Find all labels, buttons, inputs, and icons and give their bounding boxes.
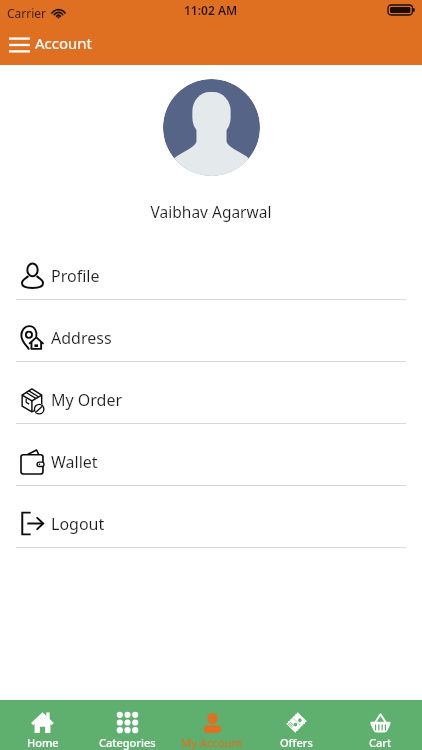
button[interactable]: My Account xyxy=(170,700,254,750)
staticText: Profile xyxy=(51,265,100,287)
staticText: Cart xyxy=(369,735,392,750)
staticText: Home xyxy=(27,735,59,750)
staticText: My Account xyxy=(181,735,243,750)
button[interactable]: Home xyxy=(0,700,85,750)
button[interactable]: Offers xyxy=(254,700,338,750)
button[interactable]: My Order xyxy=(0,362,422,424)
button[interactable]: Address xyxy=(0,300,422,362)
staticText: Logout xyxy=(51,513,105,535)
staticText: Account xyxy=(35,33,93,53)
staticText: Offers xyxy=(280,735,313,750)
button[interactable]: Categories xyxy=(85,700,170,750)
staticText: Vaibhav Agarwal xyxy=(0,201,422,222)
staticText: 11:02 AM xyxy=(184,2,238,18)
button[interactable]: Wallet xyxy=(0,424,422,486)
staticText: Carrier xyxy=(7,5,47,21)
button[interactable]: Menu xyxy=(9,37,30,53)
staticText: My Order xyxy=(51,389,123,411)
staticText: Wallet xyxy=(51,451,98,473)
staticText: Address xyxy=(51,327,112,349)
staticText: Categories xyxy=(99,735,156,750)
button[interactable]: Profile xyxy=(0,238,422,300)
button[interactable]: Logout xyxy=(0,486,422,548)
button[interactable]: Cart xyxy=(338,700,422,750)
